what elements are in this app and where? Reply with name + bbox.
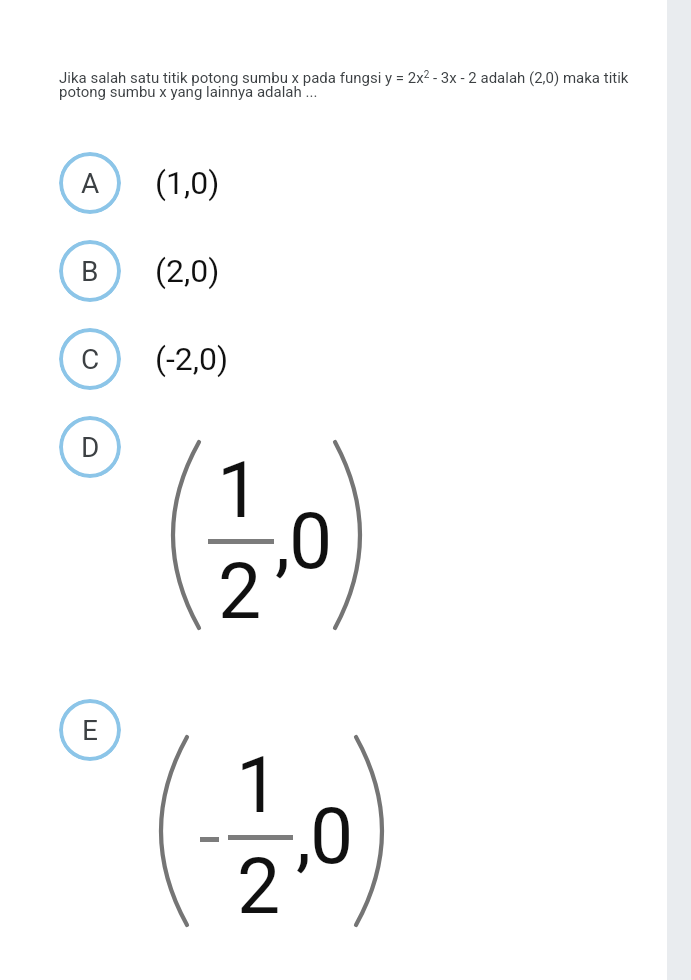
button[interactable]: Option D <box>59 416 121 478</box>
staticText: E <box>82 714 98 747</box>
staticText: (1,0) <box>155 164 220 202</box>
staticText: Jika salah satu titik potong sumbu x pad… <box>59 69 634 101</box>
staticText: , <box>296 791 312 881</box>
staticText: 2 <box>218 547 262 637</box>
staticText: B <box>81 255 99 288</box>
button[interactable]: (-2,0) <box>150 332 248 378</box>
staticText: (-2,0) <box>155 340 229 378</box>
staticText: , <box>275 496 291 586</box>
button[interactable]: Option D, one half, zero <box>168 437 368 637</box>
staticText: C <box>81 343 100 376</box>
staticText: 2 <box>237 842 281 932</box>
button[interactable]: Option A <box>59 152 121 214</box>
button[interactable]: (2,0) <box>150 244 240 290</box>
button[interactable]: Option B <box>59 240 121 302</box>
staticText: A <box>81 167 100 200</box>
button[interactable]: Option E <box>59 699 121 761</box>
staticText: 0 <box>289 497 333 587</box>
button[interactable]: Option E, minus one half, zero <box>156 732 386 932</box>
staticText: D <box>81 431 100 464</box>
staticText: 0 <box>310 792 354 882</box>
staticText: (2,0) <box>155 252 220 290</box>
staticText: 1 <box>217 446 261 536</box>
button[interactable]: (1,0) <box>150 156 240 202</box>
staticText: 1 <box>236 741 280 831</box>
button[interactable]: Option C <box>59 328 121 390</box>
